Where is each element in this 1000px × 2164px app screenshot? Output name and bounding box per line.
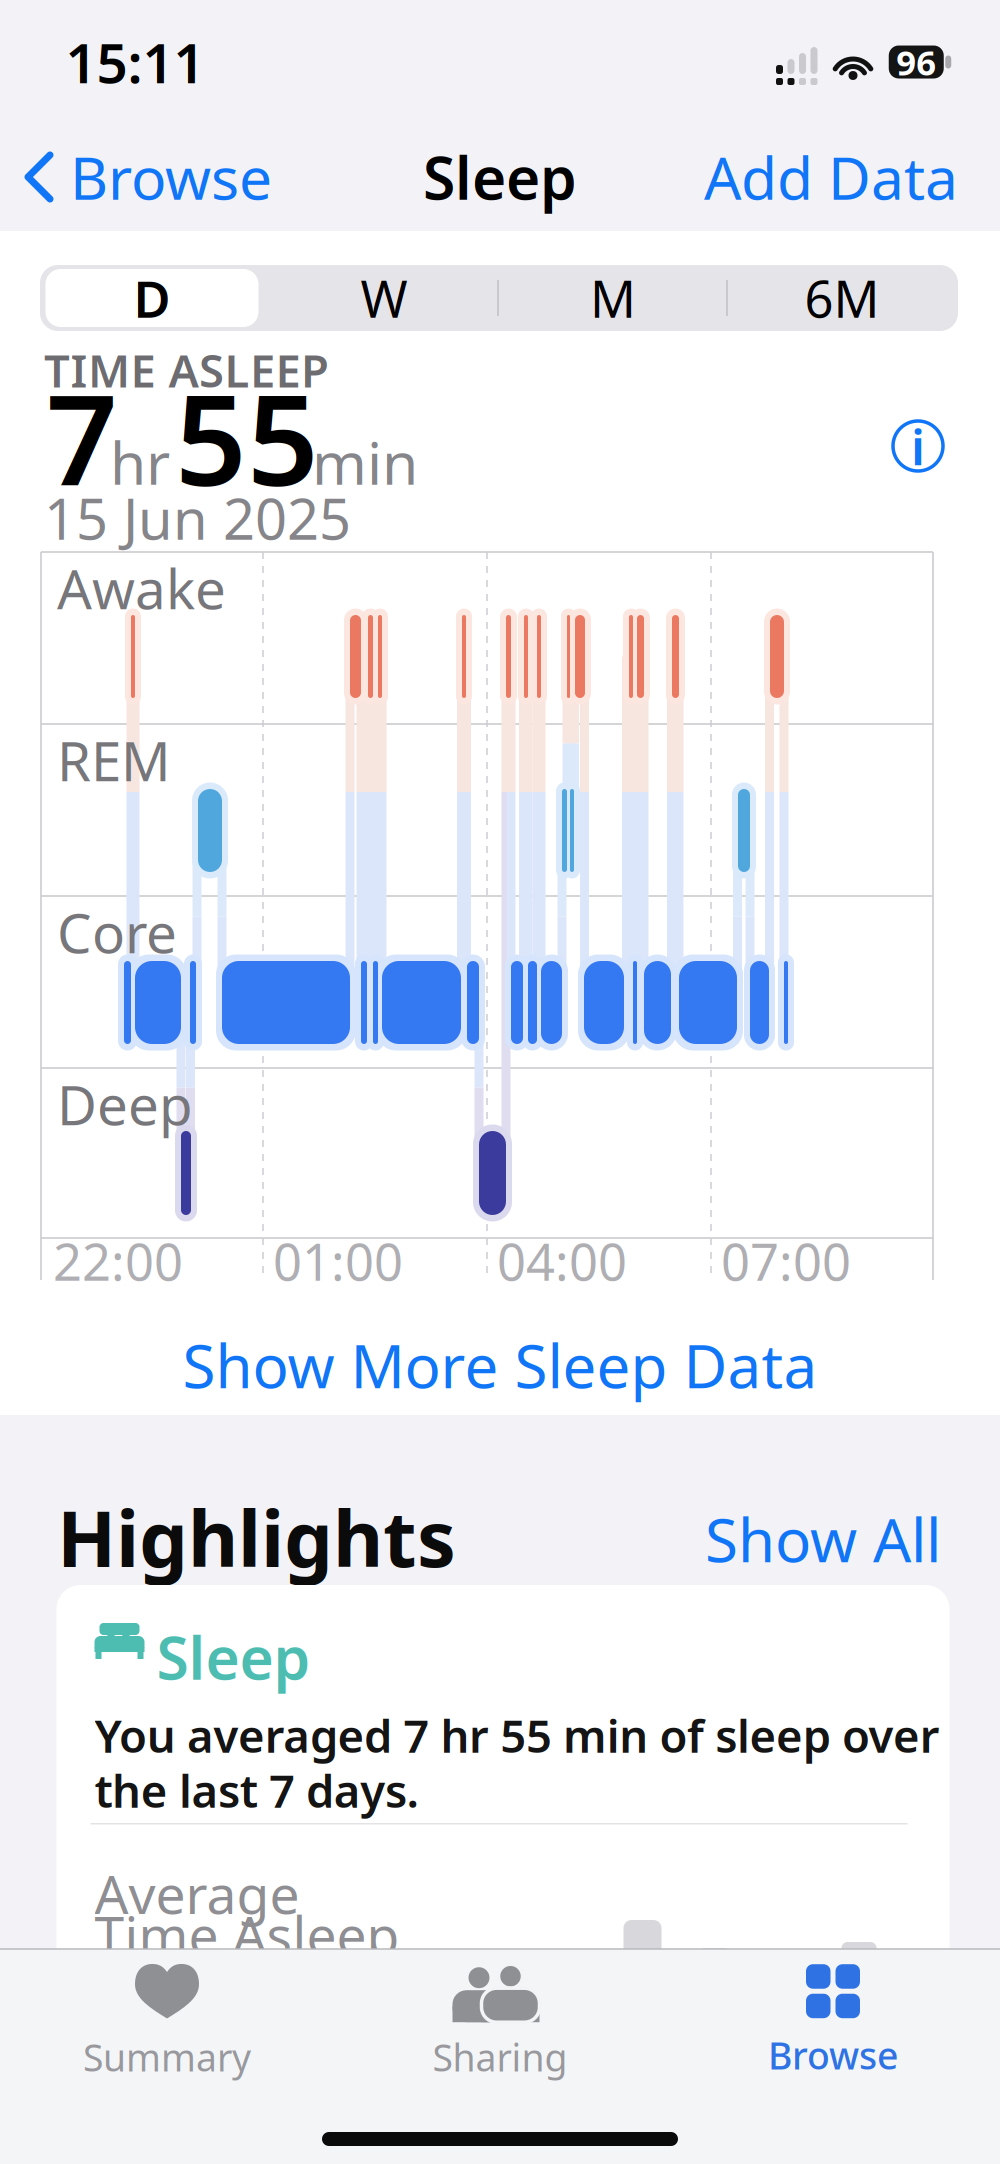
button[interactable]: Show More Sleep Data (182, 1325, 817, 1405)
staticText: the last 7 days. (94, 1760, 419, 1820)
button[interactable]: Browse (28, 138, 272, 216)
button[interactable]: About Time Asleep (888, 416, 948, 476)
staticText: D (133, 264, 170, 332)
button[interactable]: Browse (703, 1957, 963, 2087)
staticText: Highlights (57, 1486, 456, 1588)
button[interactable]: W (274, 267, 494, 329)
button[interactable]: Sleep (56, 1585, 949, 2153)
staticText: 55 (175, 354, 319, 520)
button[interactable]: Summary (37, 1957, 297, 2087)
staticText: TIME ASLEEP (44, 340, 329, 400)
staticText: Sleep (423, 138, 577, 216)
staticText: Summary (83, 2032, 251, 2082)
staticText: 22:00 (53, 1227, 183, 1295)
staticText: Browse (70, 138, 272, 216)
button[interactable]: Add Data (704, 138, 958, 216)
staticText: W (360, 264, 407, 332)
button[interactable]: 6M (732, 267, 952, 329)
staticText: REM (57, 724, 171, 796)
staticText: M (590, 264, 636, 332)
staticText: 6M (804, 264, 879, 332)
staticText: Core (57, 896, 177, 968)
staticText: 15 Jun 2025 (44, 481, 351, 555)
staticText: Average (94, 1858, 299, 1929)
staticText: Add Data (704, 138, 958, 216)
staticText: Browse (768, 2030, 898, 2080)
staticText: 07:00 (721, 1227, 851, 1295)
button[interactable]: Sharing (370, 1957, 630, 2087)
staticText: 96 (896, 39, 936, 85)
staticText: 15:11 (65, 26, 204, 98)
staticText: i (911, 413, 925, 479)
staticText: Awake (57, 552, 226, 624)
staticText: min (312, 423, 418, 501)
staticText: Show All (705, 1499, 941, 1579)
staticText: 7 (46, 354, 118, 520)
staticText: 01:00 (273, 1227, 403, 1295)
staticText: hr (110, 423, 170, 501)
staticText: Deep (57, 1068, 193, 1140)
button[interactable]: Show All (705, 1499, 941, 1579)
staticText: Sharing (432, 2032, 567, 2082)
staticText: Show More Sleep Data (182, 1325, 817, 1405)
staticText: Time Asleep (94, 1899, 399, 1970)
staticText: 04:00 (497, 1227, 627, 1295)
staticText: Sleep (156, 1618, 310, 1696)
staticText: You averaged 7 hr 55 min of sleep over (94, 1705, 940, 1765)
button[interactable]: D (45, 269, 258, 327)
button[interactable]: M (503, 267, 723, 329)
